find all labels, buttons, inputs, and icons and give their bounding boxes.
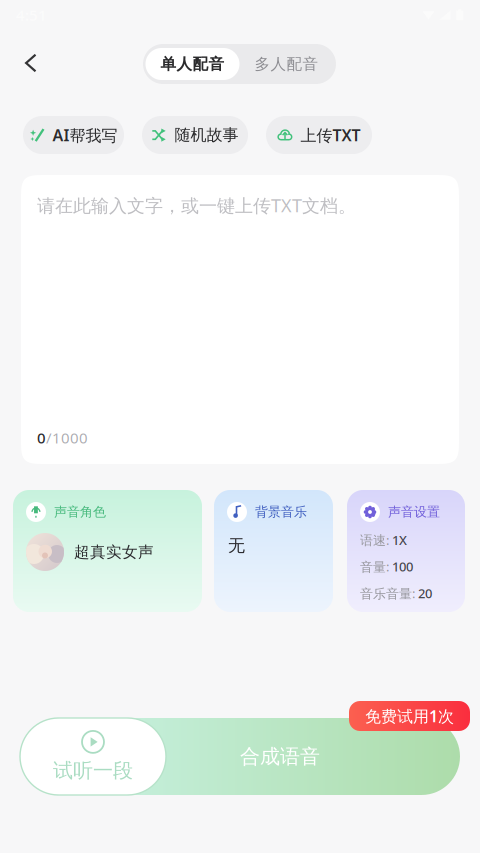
staticText: /1000 xyxy=(46,428,88,448)
staticText: 20 xyxy=(418,584,432,602)
button[interactable]: 合成语音 xyxy=(100,718,460,795)
staticText: 单人配音 xyxy=(160,54,224,74)
button[interactable]: 上传TXT xyxy=(266,116,372,154)
staticText: 请在此输入文字，或一键上传TXT文档。 xyxy=(37,193,356,217)
staticText: 随机故事 xyxy=(174,125,238,145)
button[interactable]: 单人配音 xyxy=(145,48,239,80)
staticText: 超真实女声 xyxy=(74,542,154,562)
staticText: 无 xyxy=(228,535,245,556)
staticText: 音量: xyxy=(360,558,392,575)
button[interactable]: 背景音乐 xyxy=(214,490,333,612)
staticText: 免费试用1次 xyxy=(365,705,454,727)
staticText: 背景音乐 xyxy=(255,504,307,520)
button[interactable]: 声音角色 xyxy=(13,490,202,612)
button[interactable]: 试听一段 xyxy=(20,718,166,795)
button[interactable]: 多人配音 xyxy=(239,48,333,80)
staticText: 1X xyxy=(392,531,407,549)
staticText: 声音角色 xyxy=(54,504,106,520)
staticText: AI帮我写 xyxy=(52,124,117,146)
button[interactable]: 声音设置 xyxy=(347,490,465,612)
staticText: 试听一段 xyxy=(53,758,133,783)
button[interactable]: Back xyxy=(9,41,53,85)
staticText: 合成语音 xyxy=(240,744,320,769)
staticText: 上传TXT xyxy=(300,124,360,146)
staticText: 多人配音 xyxy=(254,54,318,74)
button[interactable]: AI帮我写 xyxy=(23,116,124,154)
staticText: 声音设置 xyxy=(388,504,440,520)
button[interactable]: 随机故事 xyxy=(142,116,248,154)
staticText: 0 xyxy=(37,428,46,448)
staticText: 100 xyxy=(392,558,413,575)
staticText: 语速: xyxy=(360,531,392,549)
staticText: 音乐音量: xyxy=(360,584,418,602)
